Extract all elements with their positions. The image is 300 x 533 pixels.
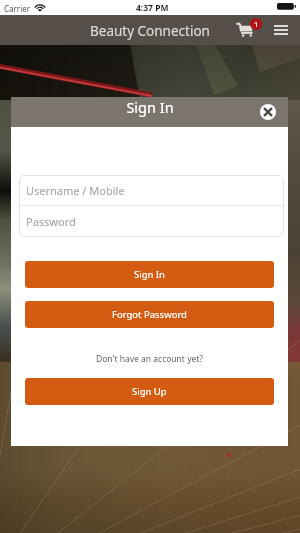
staticText: Sign Up [132, 385, 167, 398]
button[interactable]: Password [19, 206, 284, 236]
staticText: Beauty Connection [90, 22, 210, 40]
staticText: Sign In [126, 97, 174, 117]
staticText: Username / Mobile [26, 183, 125, 198]
staticText: Carrier [4, 3, 31, 14]
staticText: Forgot Password [112, 308, 187, 321]
button[interactable]: Forgot Password [25, 301, 274, 328]
button[interactable]: Shopping cart [233, 20, 255, 40]
button[interactable]: Sign In [25, 261, 274, 288]
button[interactable]: Menu [271, 21, 291, 39]
staticText: Password [26, 214, 76, 229]
button[interactable]: Close [256, 100, 280, 124]
staticText: 4:37 PM [136, 2, 169, 14]
staticText: 1 [254, 19, 259, 29]
button[interactable]: Username / Mobile [19, 175, 284, 205]
staticText: Sign In [134, 268, 165, 281]
staticText: Don't have an account yet? [96, 353, 204, 365]
button[interactable]: Sign Up [25, 378, 274, 405]
